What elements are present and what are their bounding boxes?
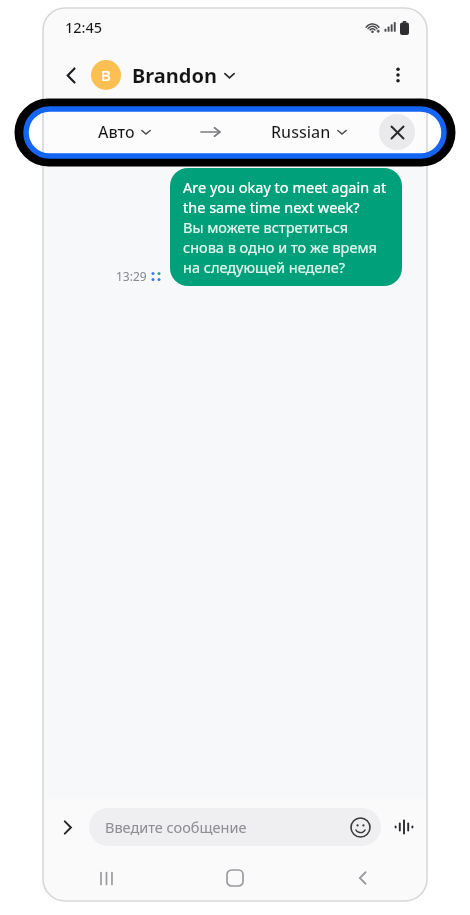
staticText: Введите сообщение [105, 817, 247, 837]
staticText: Brandon [132, 62, 217, 89]
staticText: 13:29 [116, 268, 147, 284]
button[interactable]: Home [171, 855, 299, 901]
button[interactable]: B [91, 60, 235, 90]
button[interactable]: Back [299, 855, 427, 901]
button[interactable]: Авто [94, 117, 155, 147]
staticText: Are you okay to meet again at the same t… [183, 177, 389, 217]
button[interactable]: Введите сообщение [89, 808, 381, 846]
button[interactable]: Close translation [379, 114, 415, 150]
staticText: B [101, 65, 111, 85]
button[interactable]: Voice input [385, 808, 423, 846]
button[interactable]: Are you okay to meet again at the same t… [170, 168, 402, 286]
button[interactable]: Expand attachments [49, 809, 85, 845]
button[interactable]: Back [51, 55, 91, 95]
staticText: Авто [98, 121, 135, 143]
staticText: 12:45 [65, 17, 103, 37]
other: Emoji [350, 817, 371, 838]
staticText: Russian [271, 121, 331, 143]
staticText: Вы можете встретиться снова в одно и то … [183, 217, 389, 277]
button[interactable]: Russian [267, 117, 351, 147]
button[interactable]: Recents [43, 855, 171, 901]
button[interactable]: More options [379, 56, 417, 94]
